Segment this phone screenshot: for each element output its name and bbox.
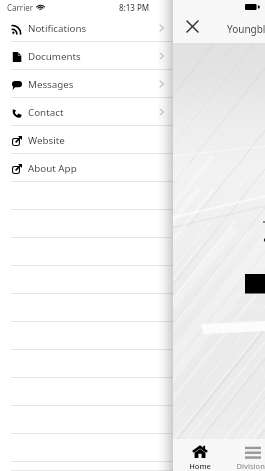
staticText: Contact — [28, 106, 64, 119]
button[interactable]: About App — [0, 154, 173, 182]
button[interactable]: Website — [0, 126, 173, 154]
staticText: Website — [28, 134, 65, 147]
staticText: Divisions — [236, 461, 265, 471]
staticText: Carrier — [7, 2, 34, 13]
button[interactable]: Divisions — [226, 439, 265, 471]
staticText: 8:13 PM — [119, 2, 150, 13]
button[interactable]: Home — [173, 439, 226, 471]
staticText: Home — [189, 461, 211, 471]
button[interactable]: Messages — [0, 70, 173, 98]
staticText: Notifications — [28, 22, 87, 35]
button[interactable]: Contact — [0, 98, 173, 126]
staticText: Messages — [28, 78, 74, 91]
button[interactable]: Notifications — [0, 14, 173, 42]
staticText: Documents — [28, 50, 81, 63]
staticText: About App — [28, 162, 77, 175]
staticText: Youngbloods Rugby Club — [227, 22, 265, 36]
button[interactable]: Documents — [0, 42, 173, 70]
button[interactable]: Close — [181, 14, 207, 40]
